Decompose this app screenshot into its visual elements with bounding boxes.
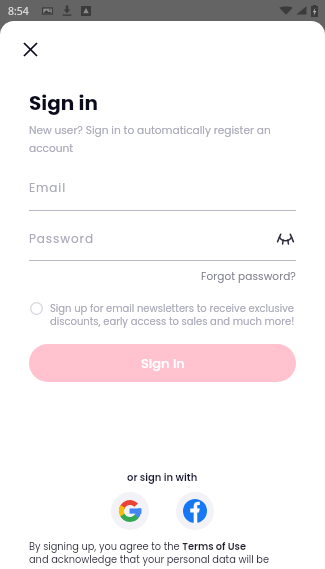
staticText: Forgot password? [201,269,296,284]
staticText: 8:54 [8,4,29,18]
staticText: or sign in with [127,470,198,484]
button[interactable]: Close [16,35,44,63]
staticText: Password [29,230,274,247]
staticText: Email [29,179,67,196]
button[interactable]: Sign in with Google [111,492,149,530]
staticText: By signing up, you agree to the Terms of… [29,540,296,567]
button[interactable]: Forgot password? [201,269,296,284]
button[interactable]: Sign up for email newsletters to receive… [29,301,296,329]
button[interactable]: Sign in [29,344,296,382]
staticText: Sign in [29,89,98,117]
staticText: Sign in [141,354,185,372]
button[interactable]: Sign in with Facebook [176,492,214,530]
staticText: Sign up for email newsletters to receive… [50,301,296,329]
button[interactable]: Show password [274,227,296,249]
staticText: New user? Sign in to automatically regis… [29,123,296,156]
